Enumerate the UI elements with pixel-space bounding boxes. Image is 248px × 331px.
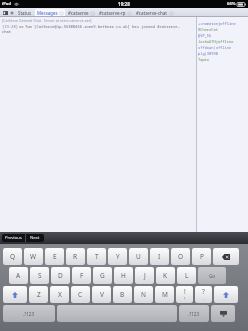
staticText: O xyxy=(178,252,184,261)
staticText: .?123 xyxy=(23,311,35,317)
button[interactable]: Messages xyxy=(35,9,65,17)
staticText: Y xyxy=(116,252,120,261)
staticText: Z xyxy=(37,290,41,299)
button[interactable]: Add xyxy=(9,10,15,16)
button[interactable]: O xyxy=(171,248,190,265)
staticText: Go xyxy=(209,273,216,279)
button[interactable]: Shift xyxy=(214,286,238,303)
button[interactable]: P xyxy=(192,248,211,265)
staticText: Status xyxy=(18,10,32,16)
button[interactable]: M xyxy=(155,286,174,303)
button[interactable]: Next xyxy=(26,234,44,242)
staticText: Messages xyxy=(37,10,58,16)
staticText: ! xyxy=(184,287,186,296)
staticText: @SP_56 xyxy=(198,33,212,38)
staticText: R xyxy=(73,252,78,261)
staticText: M xyxy=(162,290,168,299)
button[interactable]: Hide keyboard xyxy=(211,305,235,322)
button[interactable]: B xyxy=(113,286,132,303)
staticText: B xyxy=(120,290,125,299)
button[interactable]: Shift xyxy=(3,286,27,303)
staticText: ? xyxy=(202,287,205,296)
button[interactable]: Servers xyxy=(2,9,9,16)
button[interactable]: N xyxy=(134,286,153,303)
button[interactable]: Status xyxy=(16,9,34,17)
staticText: chat xyxy=(2,29,12,34)
staticText: D xyxy=(58,271,63,280)
button[interactable]: C xyxy=(71,286,90,303)
staticText: I xyxy=(158,252,161,261)
button[interactable]: Close #catserve xyxy=(90,11,94,15)
button[interactable]: V xyxy=(92,286,111,303)
button[interactable]: pJg|38990 xyxy=(198,50,248,56)
staticText: L xyxy=(185,271,189,280)
staticText: %CherrCat xyxy=(198,27,218,32)
staticText: U xyxy=(136,252,141,261)
staticText: offdown|offline xyxy=(198,45,232,50)
button[interactable]: .?123 xyxy=(3,305,55,322)
staticText: 19:28 xyxy=(118,1,130,7)
button[interactable]: +=nomatonjoffline xyxy=(198,20,248,26)
staticText: Tqwin xyxy=(198,57,210,62)
button[interactable]: E xyxy=(45,248,64,265)
staticText: [19:28] xyxy=(2,24,18,29)
button[interactable]: Space xyxy=(57,305,177,322)
button[interactable]: G xyxy=(93,267,112,284)
button[interactable]: S xyxy=(30,267,49,284)
staticText: N xyxy=(141,290,146,299)
button[interactable]: R xyxy=(66,248,85,265)
button[interactable]: Go xyxy=(198,267,226,284)
staticText: X xyxy=(58,290,62,299)
button[interactable]: A xyxy=(9,267,28,284)
staticText: #catserve-rp xyxy=(99,10,126,16)
button[interactable]: offdown|offline xyxy=(198,44,248,50)
button[interactable]: %CherrCat xyxy=(198,26,248,32)
button[interactable]: U xyxy=(129,248,148,265)
staticText: T xyxy=(95,252,99,261)
staticText: Previous xyxy=(5,235,22,241)
button[interactable]: Delete xyxy=(213,248,239,265)
button[interactable]: T xyxy=(87,248,106,265)
button[interactable]: ? xyxy=(195,286,212,303)
button[interactable]: H xyxy=(114,267,133,284)
staticText: K xyxy=(163,271,168,280)
button[interactable]: Tqwin xyxy=(198,56,248,62)
staticText: +=nomatonjoffline xyxy=(198,21,236,26)
button[interactable]: Close #catserve-chat xyxy=(169,11,173,15)
button[interactable]: ! xyxy=(176,286,193,303)
staticText: iPad xyxy=(2,1,12,7)
button[interactable]: I xyxy=(150,248,169,265)
staticText: #catserve xyxy=(68,10,89,16)
button[interactable]: Q xyxy=(3,248,22,265)
button[interactable]: #catserve-rp xyxy=(97,9,133,17)
button[interactable]: D xyxy=(51,267,70,284)
staticText: 66% xyxy=(227,1,236,7)
button[interactable]: W xyxy=(24,248,43,265)
staticText: A xyxy=(16,271,21,280)
button[interactable]: #catserve xyxy=(66,9,96,17)
button[interactable]: Previous xyxy=(2,234,25,242)
button[interactable]: #catserve-chat xyxy=(134,9,175,17)
staticText: pJg|38990 xyxy=(198,51,218,56)
staticText: Next xyxy=(30,235,40,241)
button[interactable]: J xyxy=(135,267,154,284)
staticText: [CatServe General Chat - Server at mine.… xyxy=(2,18,92,23)
button[interactable]: @SP_56 xyxy=(198,32,248,38)
button[interactable]: Close Messages xyxy=(59,11,63,15)
button[interactable]: JoshuA7Hjoffline xyxy=(198,38,248,44)
button[interactable]: L xyxy=(177,267,196,284)
staticText: G xyxy=(100,271,105,280)
button[interactable]: Close #catserve-rp xyxy=(127,11,131,15)
button[interactable]: Z xyxy=(29,286,48,303)
button[interactable]: F xyxy=(72,267,91,284)
button[interactable]: Y xyxy=(108,248,127,265)
staticText: #catserve-chat xyxy=(136,10,168,16)
button[interactable]: X xyxy=(50,286,69,303)
staticText: Q xyxy=(10,252,16,261)
staticText: JoshuA7Hjoffline xyxy=(198,39,234,44)
button[interactable]: K xyxy=(156,267,175,284)
staticText: .?123 xyxy=(188,311,200,317)
button[interactable]: .?123 xyxy=(179,305,209,322)
staticText: E xyxy=(53,252,57,261)
staticText: F xyxy=(80,271,84,280)
